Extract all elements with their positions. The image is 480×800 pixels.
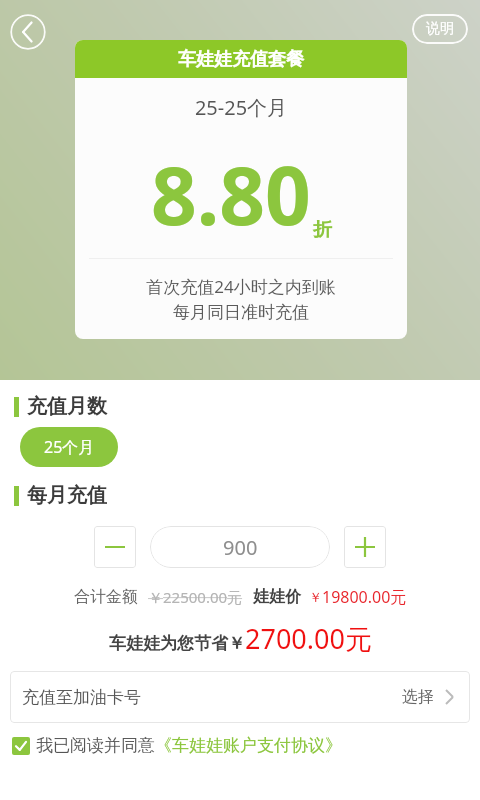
button[interactable]: 25个月: [20, 427, 118, 467]
staticText: 19800.00元: [322, 586, 407, 608]
staticText: 合计金额: [74, 587, 138, 607]
staticText: 我已阅读并同意: [36, 735, 155, 756]
staticText: 折: [313, 218, 332, 242]
staticText: 充值至加油卡号: [22, 687, 141, 708]
staticText: ￥22500.00元: [148, 587, 243, 607]
staticText: 车娃娃充值套餐: [178, 48, 304, 71]
button[interactable]: Back: [10, 14, 46, 50]
button[interactable]: 900: [150, 526, 330, 568]
button[interactable]: 说明: [412, 14, 468, 44]
staticText: 每月同日准时充值: [75, 302, 407, 323]
staticText: 选择: [402, 687, 434, 707]
staticText: 充值月数: [27, 394, 107, 419]
staticText: 《车娃娃账户支付协议》: [155, 735, 342, 756]
staticText: 25-25个月: [75, 94, 407, 121]
button[interactable]: 我已阅读并同意: [12, 735, 342, 756]
staticText: 车娃娃为您节省￥: [109, 633, 245, 654]
staticText: 说明: [426, 20, 454, 38]
staticText: 娃娃价: [253, 587, 301, 607]
button[interactable]: Increase: [344, 526, 386, 568]
button[interactable]: Decrease: [94, 526, 136, 568]
staticText: 900: [223, 534, 258, 561]
button[interactable]: 充值至加油卡号: [10, 671, 470, 723]
staticText: 2700.00元: [245, 620, 372, 657]
staticText: 每月充值: [27, 483, 107, 508]
staticText: 25个月: [44, 436, 95, 458]
staticText: 首次充值24小时之内到账: [75, 275, 407, 298]
staticText: ￥: [309, 589, 322, 605]
staticText: 8.80: [151, 139, 311, 248]
